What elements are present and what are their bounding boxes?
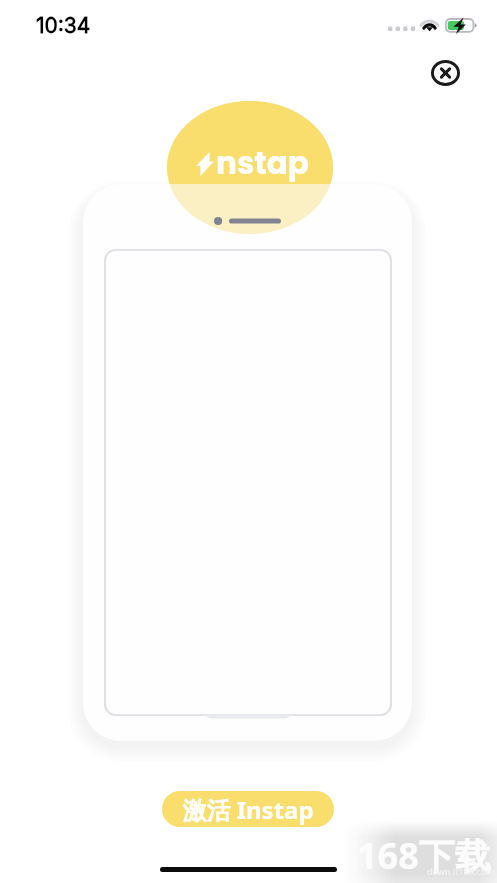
staticText: down.it168.com xyxy=(427,865,495,877)
staticText: nstap xyxy=(216,141,309,184)
staticText: 168下载 xyxy=(357,831,491,880)
staticText: 激活 Instap xyxy=(182,793,314,826)
button[interactable]: 激活 Instap xyxy=(162,791,334,827)
button[interactable]: Close xyxy=(426,54,464,92)
staticText: 10:34 xyxy=(36,13,91,38)
